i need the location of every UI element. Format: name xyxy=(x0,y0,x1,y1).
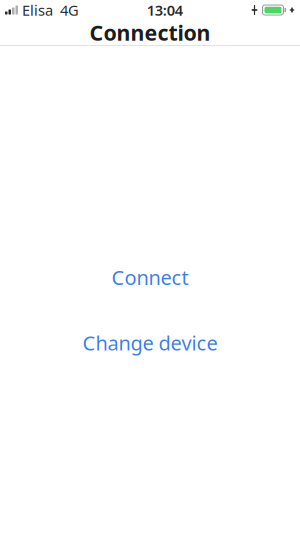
button[interactable]: Change device xyxy=(0,324,300,362)
staticText: 13:04 xyxy=(147,0,183,20)
staticText: Elisa xyxy=(22,0,53,20)
staticText: Connection xyxy=(89,18,210,47)
staticText: 4G xyxy=(60,0,79,20)
staticText: Connect xyxy=(111,264,188,291)
button[interactable]: Connect xyxy=(0,258,300,297)
staticText: Change device xyxy=(82,330,217,356)
